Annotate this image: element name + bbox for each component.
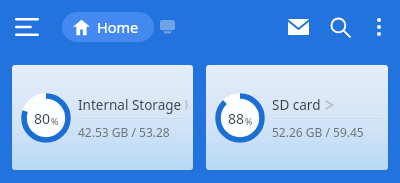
button[interactable]: 80 [12,65,193,170]
staticText: 80 [34,109,51,128]
staticText: Internal Storage [78,96,182,114]
button[interactable]: Search [319,6,361,48]
button[interactable]: Open navigation menu [6,6,48,48]
button[interactable]: 88 [206,65,388,170]
button[interactable]: Device storage tab [151,11,183,43]
button[interactable]: More options [361,9,397,45]
staticText: Home [97,17,139,37]
staticText: 88 [228,109,245,128]
staticText: SD card [272,96,321,114]
staticText: 42.53 GB / 53.28 GB [78,124,187,140]
staticText: % [245,115,253,127]
staticText: 52.26 GB / 59.45 GB [272,124,382,140]
staticText: % [51,115,59,127]
button[interactable]: Home [62,12,154,42]
button[interactable]: Messages [277,6,319,48]
